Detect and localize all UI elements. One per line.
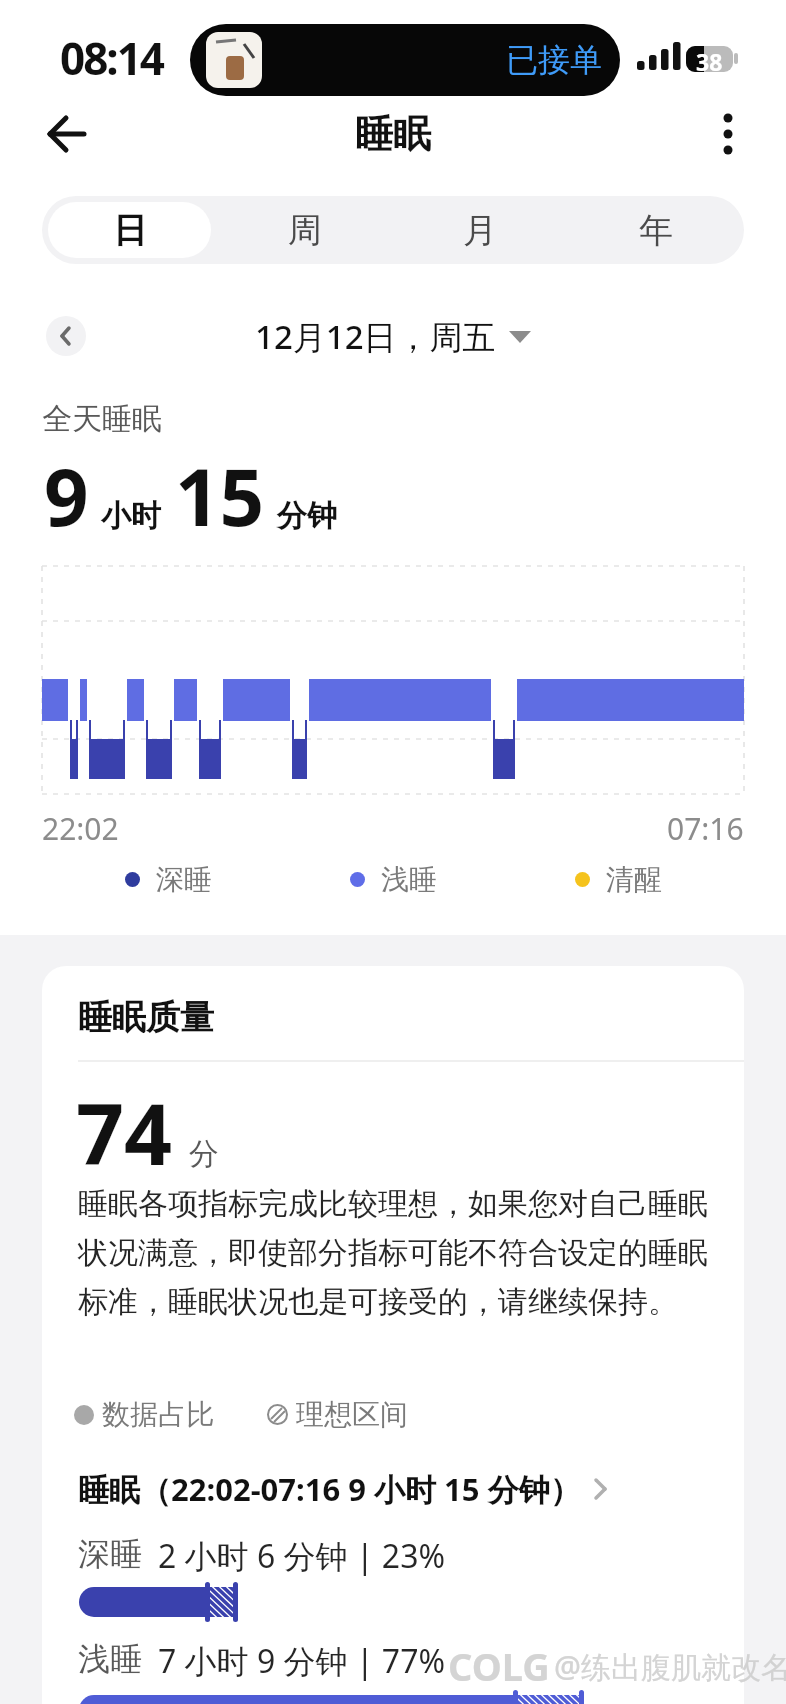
staticText: 日 — [113, 209, 147, 252]
staticText: 9 — [44, 443, 89, 549]
staticText: 睡眠（22:02-07:16 9 小时 15 分钟） — [78, 1468, 581, 1510]
button[interactable]: 浅睡 — [350, 862, 437, 897]
staticText: 分 — [189, 1135, 219, 1173]
button[interactable]: 已接单 — [190, 24, 620, 96]
staticText: 理想区间 — [296, 1397, 408, 1432]
button[interactable]: 清醒 — [575, 862, 662, 897]
staticText: 数据占比 — [102, 1397, 214, 1432]
staticText: 07:16 — [667, 808, 744, 849]
staticText: 38 — [696, 46, 723, 72]
staticText: 深睡 — [78, 1534, 142, 1574]
staticText: 2 小时 6 分钟 | 23% — [158, 1534, 446, 1578]
staticText: COLG — [448, 1640, 550, 1692]
staticText: 分钟 — [277, 497, 337, 535]
staticText: 小时 — [101, 497, 161, 535]
button[interactable]: 深睡 — [125, 862, 212, 897]
button[interactable] — [46, 316, 86, 356]
button[interactable] — [704, 110, 752, 158]
staticText: 睡眠质量 — [78, 996, 214, 1039]
button[interactable]: 周 — [217, 196, 392, 264]
staticText: 08:14 — [60, 28, 164, 88]
button[interactable]: 年 — [568, 196, 744, 264]
staticText: 周 — [288, 209, 322, 252]
staticText: 15 — [175, 443, 265, 549]
button[interactable]: 日 — [48, 202, 211, 258]
button[interactable]: 月 — [392, 196, 568, 264]
staticText: 年 — [639, 209, 673, 252]
staticText: 深睡 — [156, 862, 212, 897]
staticText: 12月12日，周五 — [255, 314, 496, 359]
button[interactable]: 睡眠（22:02-07:16 9 小时 15 分钟） — [78, 1468, 611, 1510]
staticText: 浅睡 — [78, 1639, 142, 1679]
staticText: 清醒 — [606, 862, 662, 897]
staticText: 22:02 — [42, 808, 119, 849]
staticText: 睡眠各项指标完成比较理想，如果您对自己睡眠 状况满意，即使部分指标可能不符合设定… — [78, 1185, 708, 1320]
button[interactable]: 12月12日，周五 — [255, 314, 532, 359]
staticText: 月 — [463, 209, 497, 252]
staticText: 睡眠 — [355, 110, 431, 158]
staticText: 浅睡 — [381, 862, 437, 897]
button[interactable] — [36, 104, 96, 164]
staticText: 7 小时 9 分钟 | 77% — [158, 1639, 446, 1683]
staticText: 74 — [76, 1075, 173, 1189]
staticText: 已接单 — [506, 40, 602, 80]
staticText: 全天睡眠 — [42, 400, 162, 438]
staticText: @练出腹肌就改名 — [554, 1646, 786, 1687]
